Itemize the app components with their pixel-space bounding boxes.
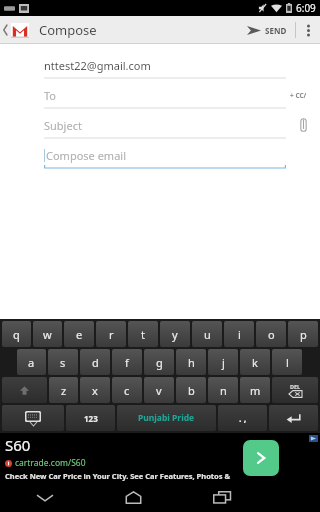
- button[interactable]: m: [240, 377, 270, 403]
- button[interactable]: k: [240, 349, 270, 375]
- staticText: Check New Car Price in Your City. See Ca…: [5, 471, 240, 481]
- button[interactable]: y: [160, 321, 190, 347]
- button[interactable]: n: [208, 377, 238, 403]
- staticText: To: [44, 88, 57, 103]
- button[interactable]: Subject: [44, 110, 286, 140]
- button[interactable]: x: [80, 377, 110, 403]
- staticText: SEND: [265, 25, 287, 36]
- button[interactable]: Hide keyboard: [2, 405, 64, 431]
- button[interactable]: s: [48, 349, 78, 375]
- staticText: k: [252, 355, 258, 370]
- button[interactable]: Home: [89, 483, 178, 512]
- staticText: + CC/BCC: [290, 91, 316, 100]
- staticText: 123: [84, 413, 98, 424]
- button[interactable]: i: [224, 321, 254, 347]
- button[interactable]: Attach file: [296, 114, 311, 136]
- staticText: s: [60, 355, 66, 370]
- button[interactable]: a: [17, 349, 46, 375]
- button[interactable]: q: [2, 321, 31, 347]
- button[interactable]: w: [33, 321, 62, 347]
- button[interactable]: Shift: [2, 377, 47, 403]
- button[interactable]: Hide keyboard: [0, 483, 89, 512]
- staticText: j: [222, 355, 225, 370]
- staticText: cartrade.com/S60: [15, 457, 86, 469]
- button[interactable]: Navigate up: [0, 16, 33, 44]
- staticText: b: [188, 383, 195, 398]
- staticText: S60: [5, 435, 31, 455]
- button[interactable]: nttest22@gmail.com: [44, 50, 286, 80]
- staticText: Subject: [44, 118, 82, 133]
- staticText: u: [204, 327, 211, 342]
- button[interactable]: To: [44, 80, 286, 110]
- staticText: f: [125, 355, 129, 370]
- button[interactable]: v: [144, 377, 174, 403]
- staticText: 6:09: [296, 1, 316, 15]
- button[interactable]: t: [128, 321, 158, 347]
- button[interactable]: Open ad: [243, 440, 279, 476]
- button[interactable]: h: [176, 349, 206, 375]
- button[interactable]: f: [112, 349, 142, 375]
- staticText: m: [250, 383, 261, 398]
- staticText: a: [28, 355, 35, 370]
- staticText: v: [156, 383, 162, 398]
- staticText: w: [43, 327, 52, 342]
- button[interactable]: Enter: [269, 405, 318, 431]
- staticText: n: [220, 383, 227, 398]
- staticText: g: [156, 355, 163, 370]
- staticText: c: [124, 383, 130, 398]
- button[interactable]: b: [176, 377, 206, 403]
- button[interactable]: g: [144, 349, 174, 375]
- button[interactable]: Space: [117, 405, 216, 431]
- button[interactable]: SEND: [239, 16, 295, 44]
- staticText: i: [238, 327, 241, 342]
- staticText: Compose: [39, 21, 97, 39]
- button[interactable]: r: [96, 321, 126, 347]
- staticText: p: [300, 327, 307, 342]
- staticText: DEL: [290, 383, 301, 390]
- button[interactable]: Recent apps: [178, 483, 267, 512]
- staticText: . ,: [239, 412, 247, 424]
- button[interactable]: e: [64, 321, 94, 347]
- staticText: r: [109, 327, 114, 342]
- button[interactable]: d: [80, 349, 110, 375]
- button[interactable]: u: [192, 321, 222, 347]
- button[interactable]: More options: [296, 16, 320, 44]
- staticText: Compose email: [46, 148, 126, 163]
- button[interactable]: Numbers: [66, 405, 115, 431]
- button[interactable]: c: [112, 377, 142, 403]
- staticText: x: [92, 383, 98, 398]
- button[interactable]: Compose email: [44, 140, 286, 170]
- button[interactable]: l: [272, 349, 302, 375]
- button[interactable]: Period: [218, 405, 267, 431]
- staticText: Punjabi Pride: [138, 412, 195, 424]
- button[interactable]: p: [288, 321, 318, 347]
- staticText: h: [188, 355, 195, 370]
- staticText: o: [268, 327, 275, 342]
- staticText: y: [172, 327, 178, 342]
- staticText: z: [61, 383, 67, 398]
- button[interactable]: j: [208, 349, 238, 375]
- staticText: q: [13, 327, 20, 342]
- staticText: l: [286, 355, 289, 370]
- button[interactable]: Delete: [272, 377, 318, 403]
- staticText: t: [141, 327, 145, 342]
- staticText: e: [76, 327, 83, 342]
- button[interactable]: o: [256, 321, 286, 347]
- button[interactable]: + CC/BCC: [286, 87, 320, 104]
- button[interactable]: S60: [0, 433, 320, 483]
- staticText: nttest22@gmail.com: [44, 58, 151, 73]
- button[interactable]: z: [49, 377, 78, 403]
- staticText: d: [92, 355, 99, 370]
